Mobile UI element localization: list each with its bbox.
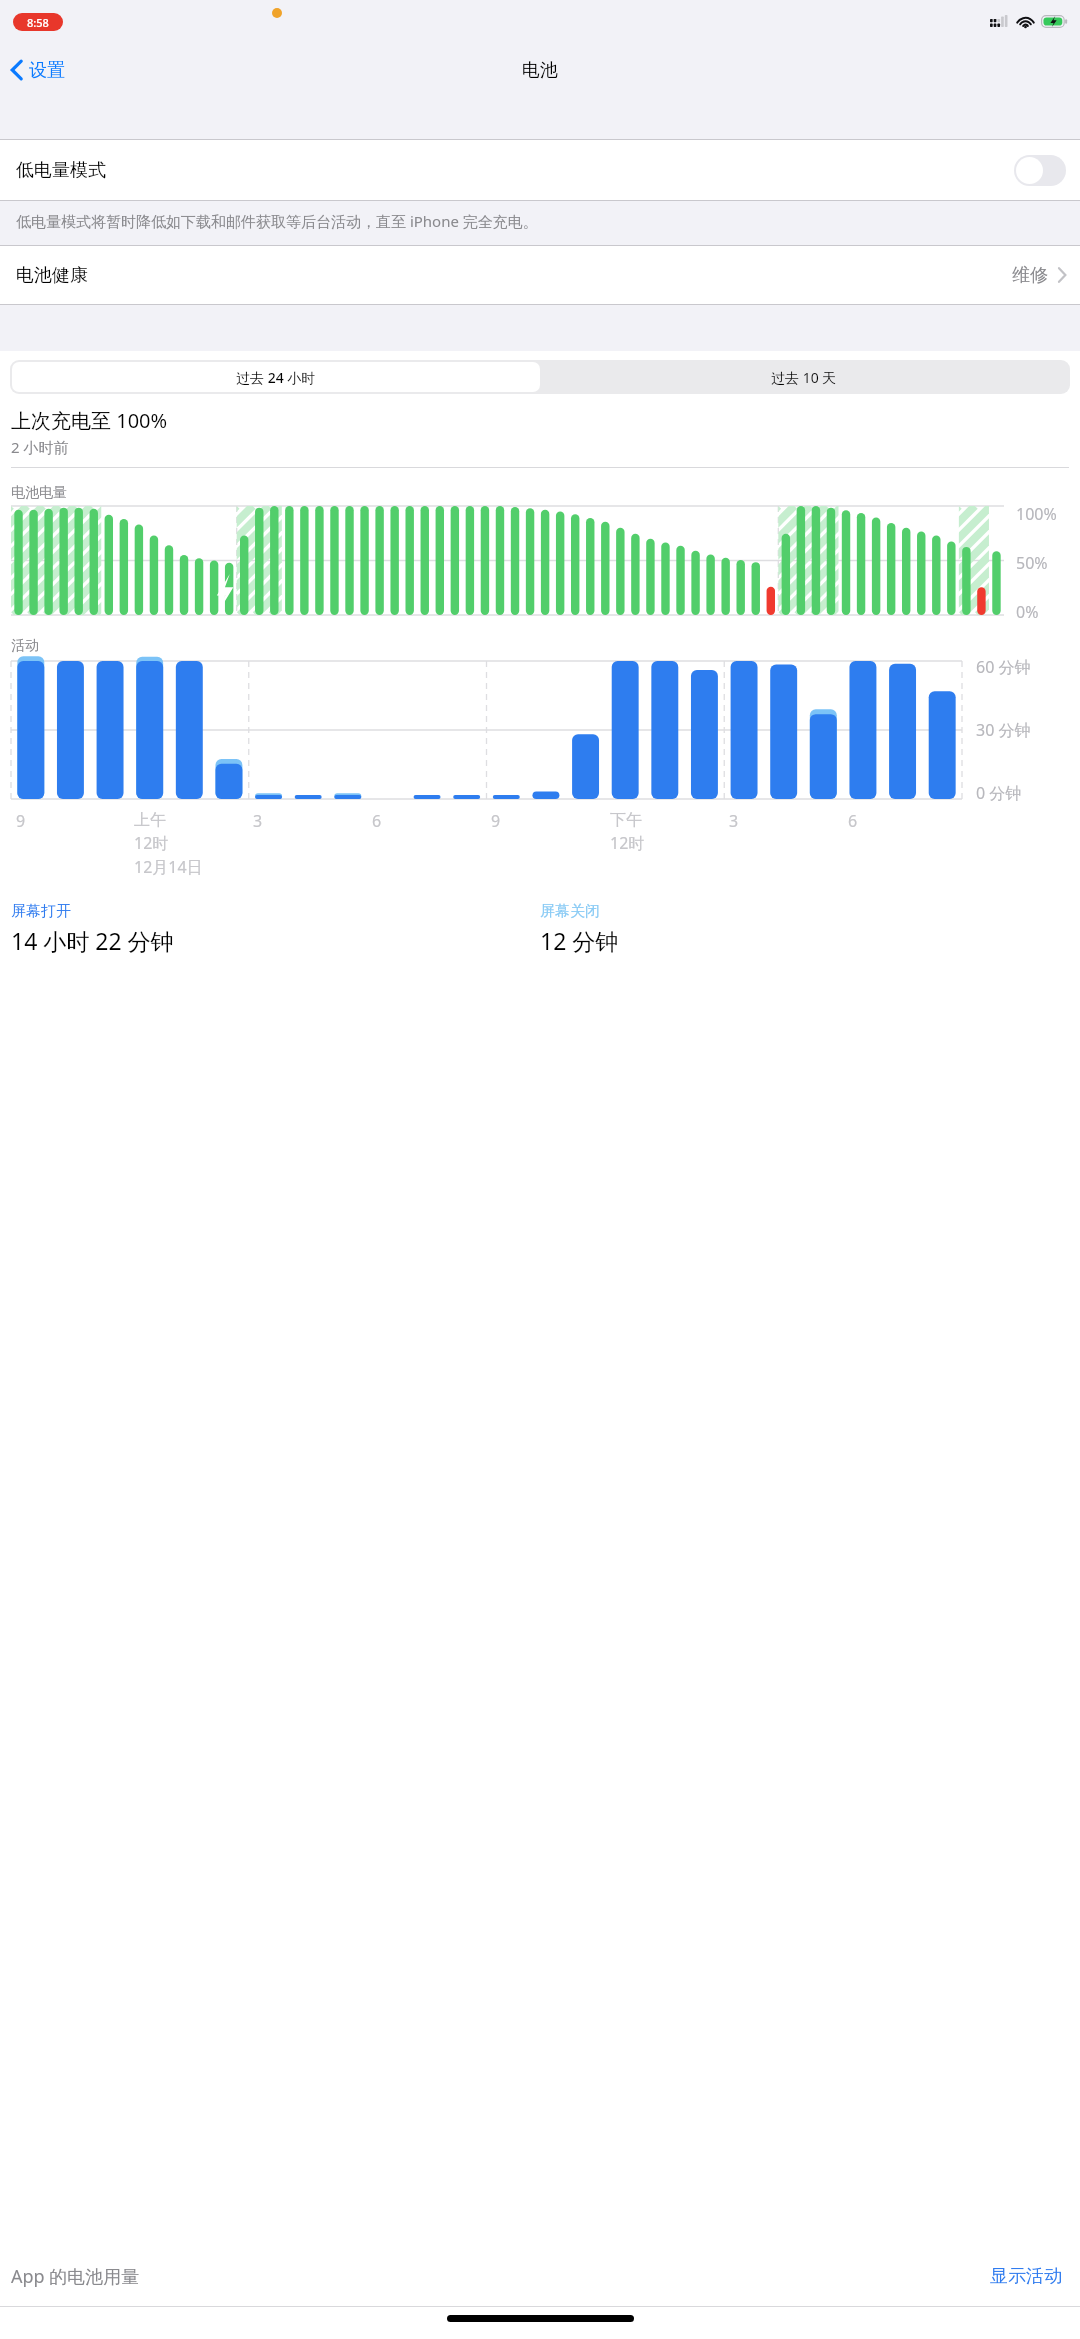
staticText: 活动 (11, 637, 39, 655)
staticText: 电池健康 (16, 264, 88, 287)
staticText: 低电量模式 (16, 159, 106, 182)
staticText: 电池 (522, 59, 558, 82)
staticText: 设置 (29, 59, 65, 82)
staticText: 60 分钟 (976, 656, 1031, 678)
button[interactable]: 低电量模式 (0, 139, 1080, 201)
staticText: 显示活动 (990, 2265, 1062, 2288)
staticText: 上次充电至 100% (11, 407, 168, 434)
staticText: 12 分钟 (540, 925, 619, 956)
staticText: 3 (729, 810, 739, 832)
button[interactable]: 过去 24 小时 (12, 362, 540, 392)
staticText: 3 (253, 810, 263, 832)
staticText: 14 小时 22 分钟 (11, 925, 174, 956)
staticText: 下午 12时 (610, 810, 645, 854)
staticText: 屏幕打开 (11, 902, 71, 921)
staticText: 0% (1016, 601, 1039, 623)
staticText: 过去 10 天 (771, 368, 837, 387)
staticText: 电池电量 (11, 484, 67, 502)
staticText: 2 小时前 (11, 437, 69, 457)
staticText: 9 (16, 810, 26, 832)
staticText: 维修 (1012, 264, 1048, 287)
staticText: 低电量模式将暂时降低如下载和邮件获取等后台活动，直至 iPhone 完全充电。 (16, 211, 538, 231)
staticText: 50% (1016, 552, 1048, 574)
staticText: 30 分钟 (976, 719, 1031, 741)
staticText: 100% (1016, 503, 1057, 525)
button[interactable]: 电池健康 (0, 245, 1080, 305)
staticText: 6 (372, 810, 382, 832)
staticText: 上午 12时 12月14日 (134, 810, 203, 878)
staticText: 8:58 (27, 15, 49, 30)
staticText: 过去 24 小时 (236, 368, 316, 387)
staticText: App 的电池用量 (11, 2264, 140, 2289)
button[interactable]: 显示活动 (986, 2261, 1066, 2292)
button[interactable]: 设置 (0, 50, 79, 90)
staticText: 6 (848, 810, 858, 832)
staticText: 9 (491, 810, 501, 832)
staticText: 屏幕关闭 (540, 902, 600, 921)
staticText: 0 分钟 (976, 782, 1022, 804)
button[interactable]: 过去 10 天 (540, 362, 1068, 392)
